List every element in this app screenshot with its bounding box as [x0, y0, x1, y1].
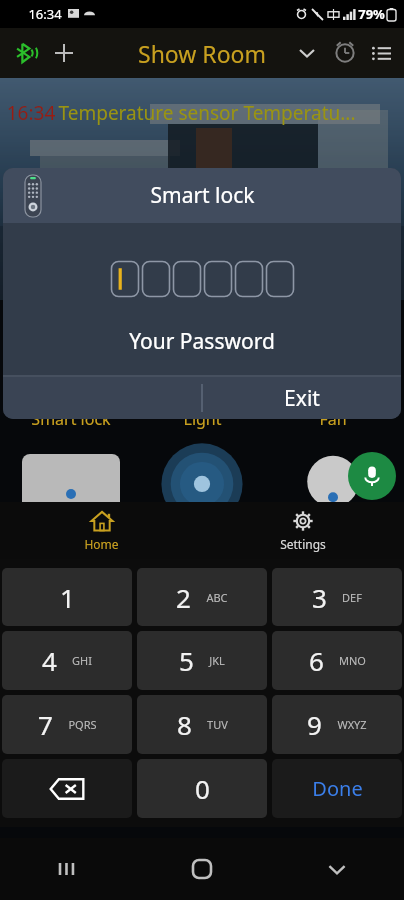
button[interactable]: 3 — [272, 568, 402, 626]
button[interactable]: 2 — [137, 568, 267, 626]
staticText: 2 — [176, 580, 191, 615]
button[interactable]: 4 — [2, 631, 132, 690]
staticText: PQRS — [68, 717, 97, 732]
button[interactable] — [234, 260, 264, 298]
button[interactable]: Alarm — [326, 34, 364, 72]
button[interactable]: Back — [269, 838, 404, 900]
staticText: Exit — [284, 384, 320, 413]
button[interactable]: Light — [142, 408, 262, 508]
button[interactable] — [172, 260, 202, 298]
button[interactable]: 6 — [272, 631, 402, 690]
button[interactable]: Exit — [202, 377, 401, 419]
button[interactable]: 9 — [272, 695, 402, 754]
button[interactable]: 1 — [2, 568, 132, 626]
button[interactable]: Backspace — [2, 759, 132, 818]
button[interactable] — [265, 260, 295, 298]
staticText: WXYZ — [337, 717, 367, 732]
staticText: MNO — [339, 653, 366, 668]
button[interactable]: Home — [0, 502, 202, 559]
button[interactable]: 0 — [137, 759, 267, 818]
staticText: DEF — [342, 590, 362, 605]
staticText: Settings — [280, 536, 326, 552]
staticText: GHI — [72, 653, 92, 668]
button[interactable] — [203, 260, 233, 298]
staticText: 6 — [309, 643, 324, 678]
staticText: 3 — [312, 580, 327, 615]
button[interactable] — [141, 260, 171, 298]
button[interactable]: 5 — [137, 631, 267, 690]
staticText: Temperature sensor Temperatu... — [58, 100, 356, 126]
button[interactable]: Settings — [202, 502, 404, 559]
button[interactable]: 7 — [2, 695, 132, 754]
button[interactable]: Recents — [0, 838, 134, 900]
button[interactable]: Home — [134, 838, 269, 900]
staticText: TUV — [207, 717, 228, 732]
button[interactable]: Add — [45, 34, 83, 72]
staticText: 7 — [38, 707, 53, 742]
button[interactable]: 8 — [137, 695, 267, 754]
button[interactable]: Voice assistant — [348, 452, 396, 500]
button[interactable]: Show Room — [138, 38, 266, 69]
staticText: 5 — [179, 643, 194, 678]
staticText: 0 — [195, 771, 210, 806]
staticText: Your Password — [129, 327, 275, 356]
button[interactable]: Bluetooth — [6, 34, 44, 72]
button[interactable]: Fan — [273, 408, 393, 508]
button[interactable]: Done — [272, 759, 402, 818]
staticText: 79% — [358, 5, 385, 23]
staticText: Home — [84, 536, 119, 552]
staticText: ABC — [206, 590, 228, 605]
staticText: 16:34 — [4, 100, 58, 126]
button[interactable] — [110, 260, 140, 298]
button[interactable]: Smart lock — [11, 408, 131, 508]
staticText: 9 — [307, 707, 322, 742]
button[interactable]: Menu — [364, 36, 398, 70]
staticText: Show Room — [138, 38, 266, 69]
staticText: Smart lock — [150, 181, 255, 210]
button[interactable]: Expand — [288, 34, 326, 72]
staticText: Fan — [319, 408, 347, 430]
staticText: 8 — [177, 707, 192, 742]
staticText: 16:34 — [28, 5, 62, 23]
staticText: 4 — [42, 643, 57, 678]
staticText: Done — [312, 775, 363, 802]
staticText: Light — [183, 408, 222, 430]
staticText: Smart lock — [31, 408, 111, 430]
staticText: JKL — [209, 653, 225, 668]
staticText: 1 — [60, 580, 75, 615]
